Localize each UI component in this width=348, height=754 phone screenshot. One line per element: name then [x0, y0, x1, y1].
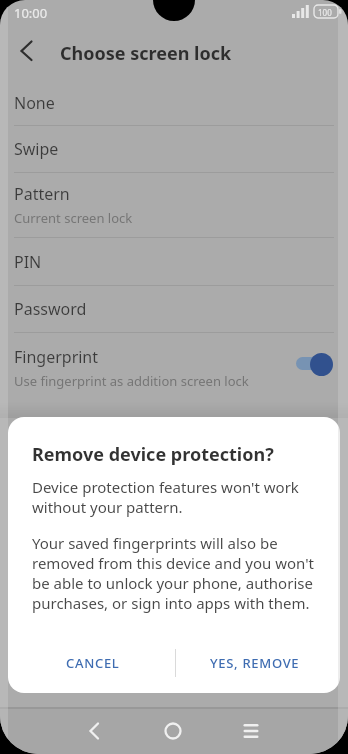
staticText: Password	[14, 298, 87, 320]
button[interactable]	[228, 708, 274, 754]
button[interactable]	[6, 34, 42, 70]
button[interactable]: Fingerprint	[0, 333, 348, 391]
button[interactable]	[150, 708, 196, 754]
button[interactable]: None	[0, 81, 348, 125]
staticText: 100	[318, 7, 332, 18]
button[interactable]: Swipe	[0, 126, 348, 172]
staticText: Pattern	[14, 183, 70, 205]
button[interactable]	[294, 351, 334, 377]
staticText: Swipe	[14, 138, 59, 160]
button[interactable]: Pattern	[0, 173, 348, 237]
staticText: Your saved fingerprints will also be rem…	[32, 533, 314, 613]
staticText: Choose screen lock	[60, 41, 232, 66]
button[interactable]: YES, REMOVE	[201, 645, 309, 681]
staticText: YES, REMOVE	[210, 654, 300, 672]
button[interactable]	[72, 708, 118, 754]
button[interactable]: Password	[0, 286, 348, 332]
staticText: CANCEL	[66, 654, 120, 672]
button[interactable]: CANCEL	[53, 645, 133, 681]
staticText: None	[14, 92, 55, 114]
staticText: Fingerprint	[14, 346, 99, 368]
staticText: 10:00	[14, 4, 48, 22]
button[interactable]: PIN	[0, 238, 348, 285]
staticText: Remove device protection?	[32, 442, 274, 467]
staticText: Device protection features won't work wi…	[32, 477, 299, 517]
staticText: PIN	[14, 251, 42, 273]
staticText: Use fingerprint as addition screen lock	[14, 372, 249, 390]
staticText: Current screen lock	[14, 209, 133, 227]
